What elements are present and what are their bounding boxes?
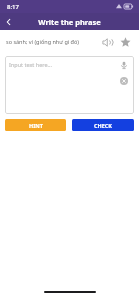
staticText: CHECK — [94, 122, 113, 129]
button[interactable]: Play audio — [99, 34, 115, 50]
button[interactable]: HINT — [5, 119, 66, 131]
button[interactable]: Input text here... — [5, 56, 134, 114]
staticText: Input text here... — [9, 61, 52, 68]
button[interactable]: CHECK — [72, 119, 134, 131]
staticText: 8:17 — [7, 3, 19, 11]
staticText: HINT — [29, 122, 43, 129]
button[interactable]: Clear text — [118, 75, 130, 87]
button[interactable]: Voice input — [118, 59, 130, 71]
button[interactable]: Favorite — [117, 34, 133, 50]
button[interactable]: Back — [0, 13, 17, 30]
staticText: Write the phrase — [38, 17, 101, 27]
staticText: so sánh; ví (giống như gì đó) — [6, 38, 99, 45]
